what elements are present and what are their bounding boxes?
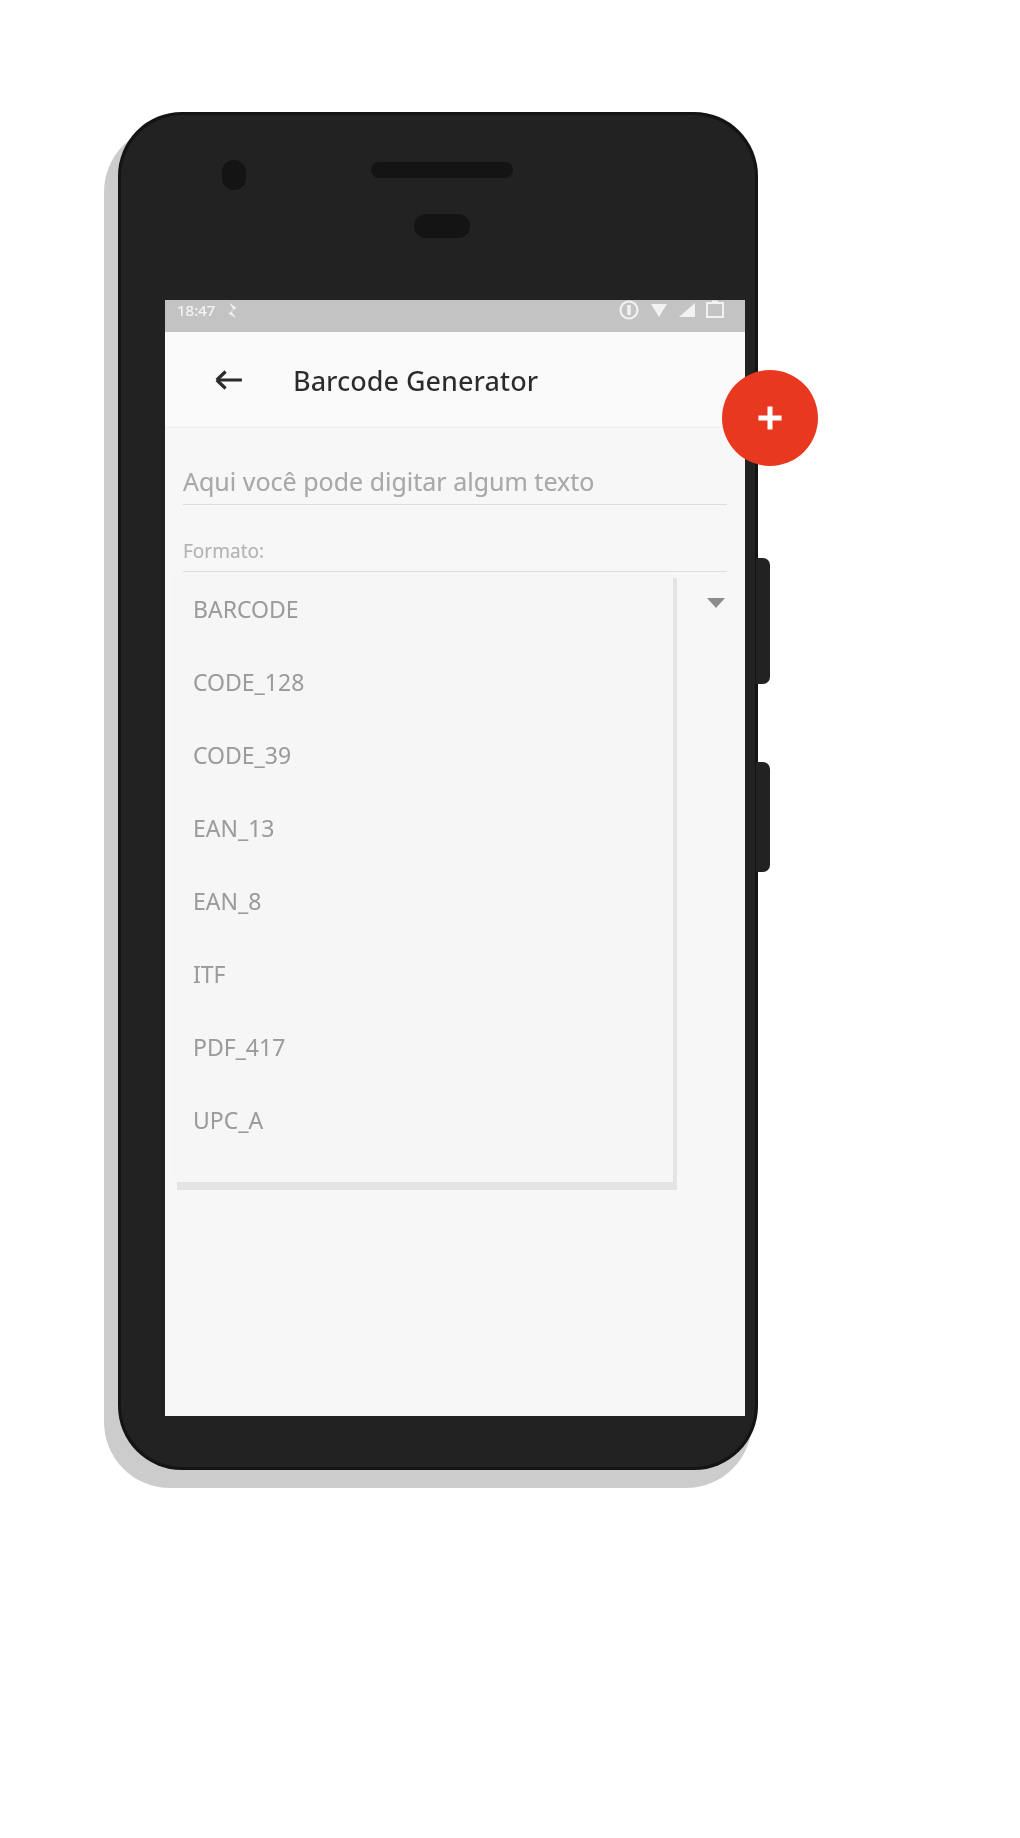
button[interactable]: PDF_417 — [173, 1010, 673, 1083]
staticText: UPC_A — [193, 1104, 264, 1135]
button[interactable]: BARCODE — [173, 572, 673, 645]
staticText: Aqui você pode digitar algum texto — [183, 464, 595, 498]
staticText: Barcode Generator — [293, 362, 539, 399]
staticText: ITF — [193, 958, 226, 989]
staticText: CODE_128 — [193, 666, 305, 697]
button[interactable]: Add barcode — [722, 370, 818, 466]
button[interactable]: Back — [193, 332, 265, 428]
button[interactable]: CODE_128 — [173, 645, 673, 718]
button[interactable]: Aqui você pode digitar algum texto — [183, 458, 727, 504]
button[interactable]: CODE_39 — [173, 718, 673, 791]
staticText: EAN_8 — [193, 885, 262, 916]
staticText: 18:47 — [177, 300, 216, 320]
staticText: EAN_13 — [193, 812, 275, 843]
button[interactable]: UPC_A — [173, 1083, 673, 1156]
button[interactable]: EAN_13 — [173, 791, 673, 864]
staticText: BARCODE — [193, 593, 299, 624]
staticText: CODE_39 — [193, 739, 292, 770]
button[interactable]: ITF — [173, 937, 673, 1010]
staticText: Formato: — [183, 538, 265, 564]
button[interactable]: Formato: — [183, 531, 727, 571]
button[interactable]: EAN_8 — [173, 864, 673, 937]
staticText: PDF_417 — [193, 1031, 286, 1062]
